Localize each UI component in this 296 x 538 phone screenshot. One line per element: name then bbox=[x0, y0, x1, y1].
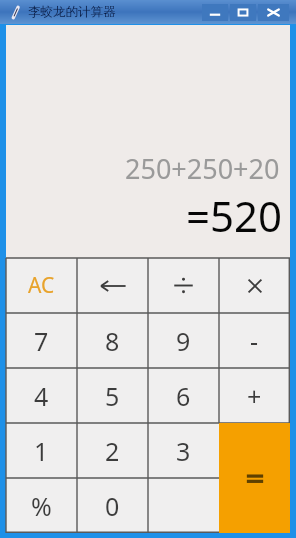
staticText: 9 bbox=[176, 324, 191, 358]
staticText: 3 bbox=[176, 434, 191, 468]
button[interactable]: 0 bbox=[77, 478, 148, 533]
staticText: AC bbox=[28, 271, 55, 300]
staticText: - bbox=[250, 324, 259, 358]
button[interactable]: + bbox=[219, 368, 290, 423]
button[interactable]: % bbox=[6, 478, 77, 533]
staticText: % bbox=[31, 489, 52, 523]
button[interactable]: 7 bbox=[6, 313, 77, 368]
other: Multiply bbox=[219, 258, 290, 313]
staticText: 8 bbox=[105, 324, 120, 358]
other: Divide bbox=[148, 258, 219, 313]
button[interactable]: Equals bbox=[219, 423, 290, 533]
staticText: 0 bbox=[105, 489, 120, 523]
staticText: =520 bbox=[186, 187, 283, 244]
other: App icon bbox=[9, 6, 22, 19]
button[interactable]: Multiply bbox=[219, 258, 290, 313]
button[interactable]: AC bbox=[6, 258, 77, 313]
button[interactable]: Backspace bbox=[77, 258, 148, 313]
staticText: 4 bbox=[34, 379, 49, 413]
button[interactable]: Maximize bbox=[230, 4, 256, 21]
staticText: + bbox=[247, 379, 262, 413]
staticText: 5 bbox=[105, 379, 120, 413]
other: Equals bbox=[243, 466, 267, 490]
button[interactable]: 8 bbox=[77, 313, 148, 368]
button[interactable]: 3 bbox=[148, 423, 219, 478]
button[interactable]: 9 bbox=[148, 313, 219, 368]
button[interactable]: Divide bbox=[148, 258, 219, 313]
button[interactable]: - bbox=[219, 313, 290, 368]
button[interactable]: 6 bbox=[148, 368, 219, 423]
button[interactable]: 2 bbox=[77, 423, 148, 478]
staticText: 2 bbox=[105, 434, 120, 468]
button[interactable]: Close bbox=[258, 4, 289, 21]
button[interactable]: 5 bbox=[77, 368, 148, 423]
staticText: 1 bbox=[34, 434, 49, 468]
button[interactable] bbox=[148, 478, 219, 533]
staticText: 6 bbox=[176, 379, 191, 413]
staticText: 7 bbox=[34, 324, 49, 358]
staticText: 李蛟龙的计算器 bbox=[28, 4, 116, 20]
button[interactable]: Minimize bbox=[202, 4, 228, 21]
button[interactable]: 1 bbox=[6, 423, 77, 478]
button[interactable]: 4 bbox=[6, 368, 77, 423]
other: Backspace bbox=[77, 258, 148, 313]
staticText: 250+250+20 bbox=[125, 150, 280, 187]
